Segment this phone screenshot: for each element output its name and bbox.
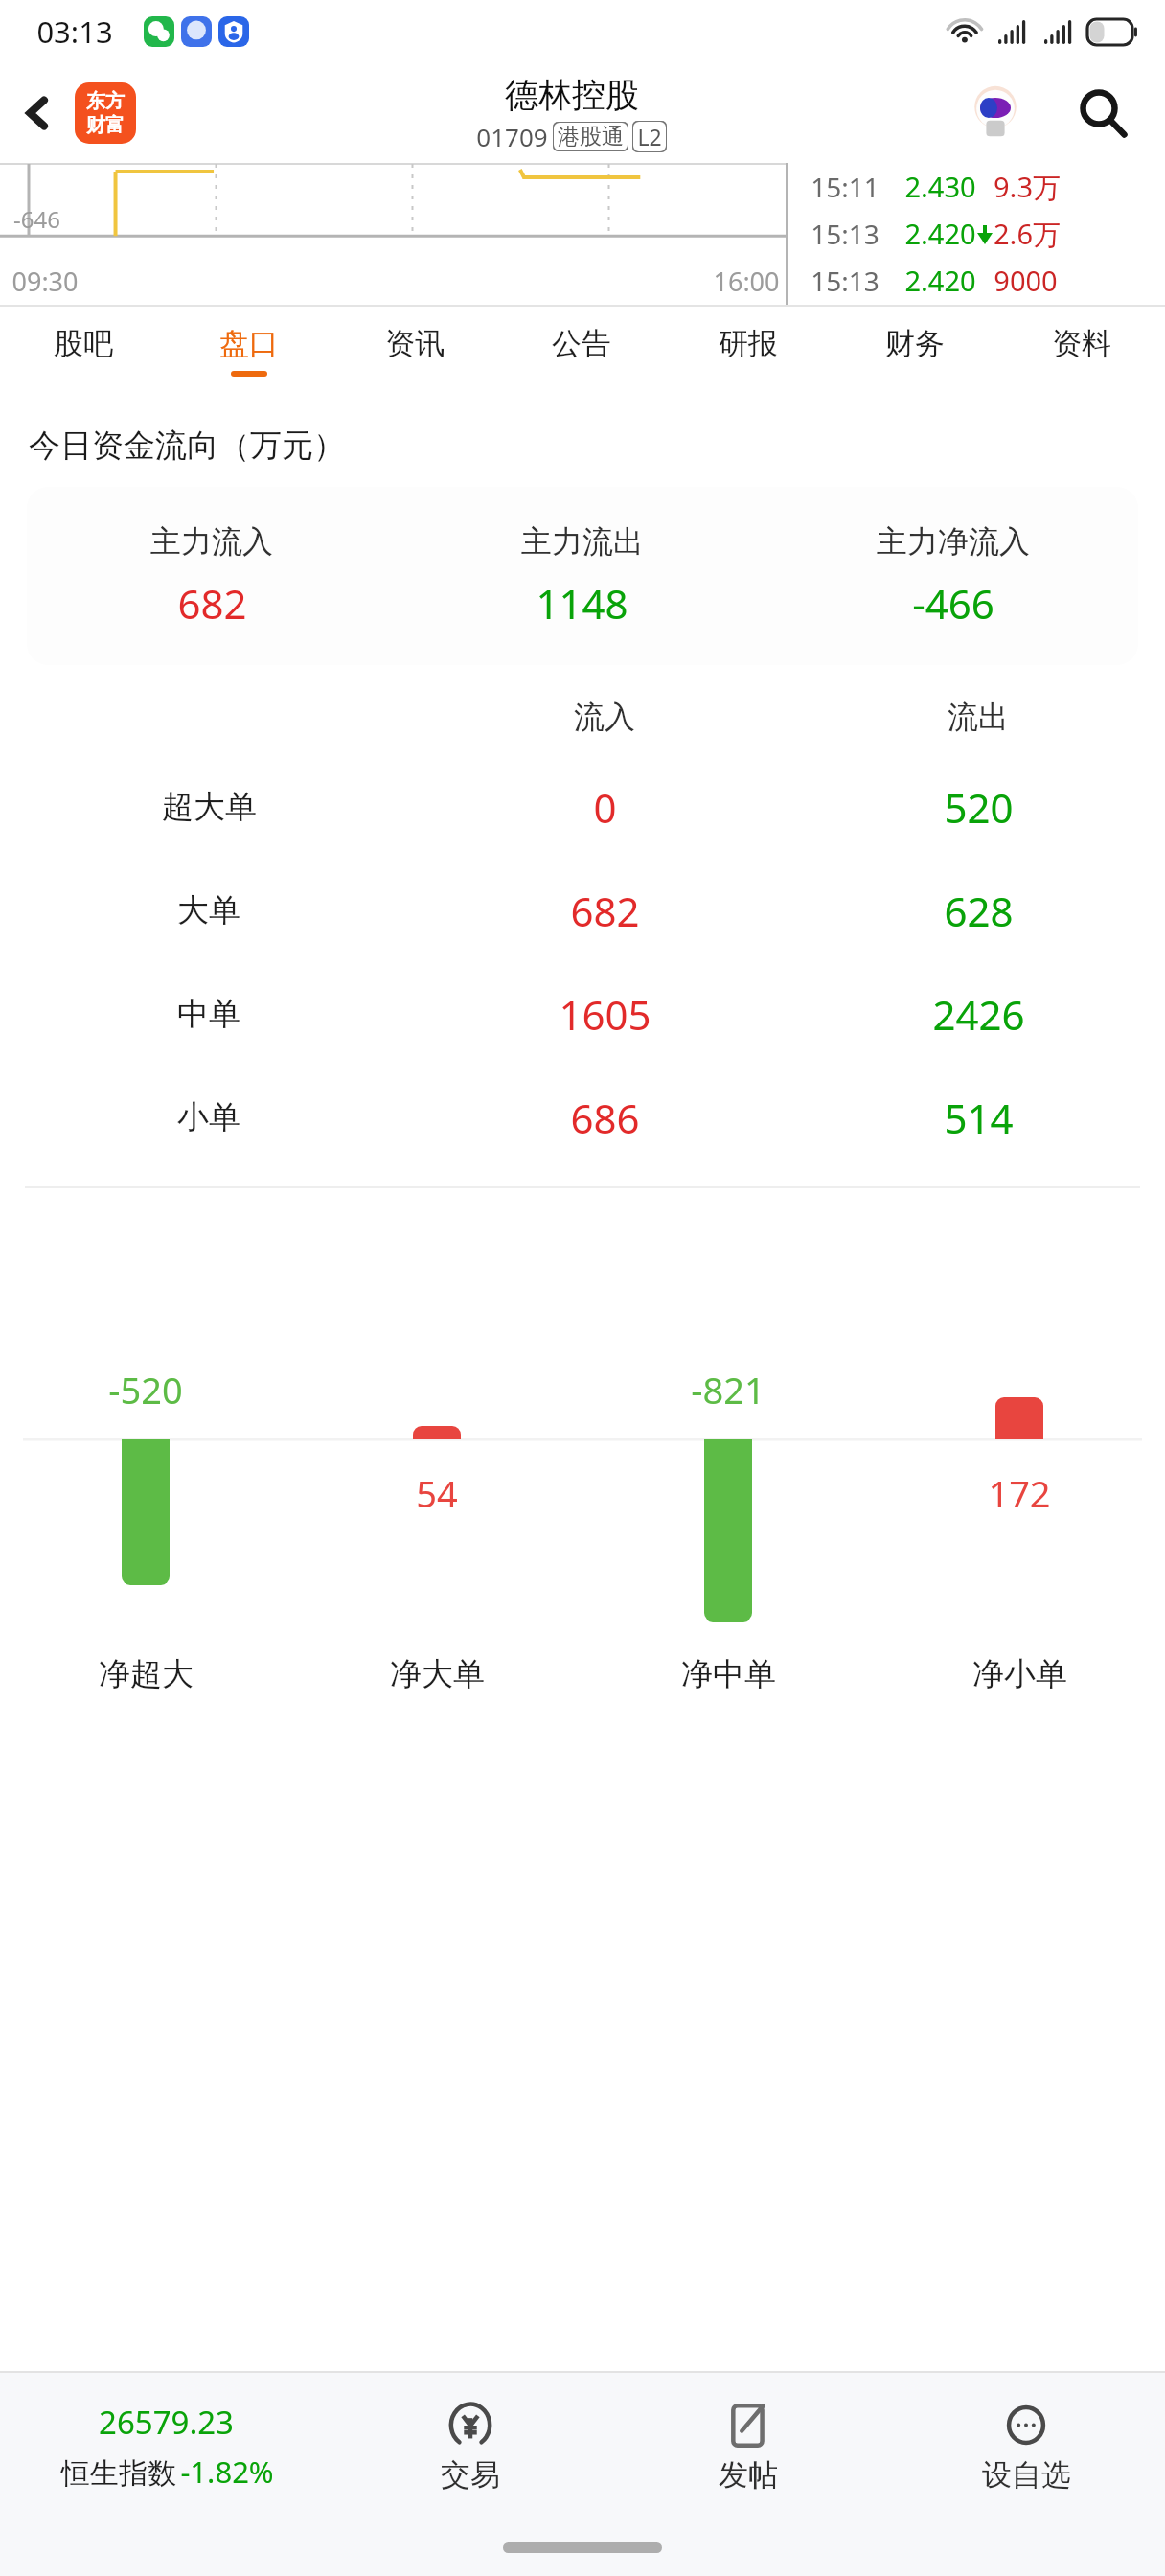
staticText: 设自选: [982, 2456, 1071, 2494]
staticText: 514: [944, 1091, 1014, 1145]
button[interactable]: 盘口: [166, 305, 331, 397]
staticText: 恒生指数: [57, 2452, 180, 2492]
button[interactable]: 资讯: [331, 305, 498, 397]
staticText: 德林控股: [505, 74, 639, 116]
button[interactable]: 研报: [665, 305, 832, 397]
button[interactable]: 主力流入: [27, 487, 1138, 665]
staticText: 682: [177, 576, 247, 631]
staticText: 0: [593, 780, 617, 835]
button[interactable]: 中单: [0, 962, 1165, 1066]
staticText: 520: [944, 780, 1014, 835]
staticText: 东方: [86, 89, 125, 113]
staticText: 中单: [177, 994, 240, 1034]
staticText: 1148: [536, 576, 628, 631]
staticText: 超大单: [162, 787, 257, 827]
staticText: 172: [988, 1468, 1051, 1518]
staticText: 净小单: [972, 1654, 1067, 1694]
staticText: 小单: [177, 1097, 240, 1138]
staticText: 流出: [948, 698, 1009, 736]
staticText: 公告: [552, 325, 611, 362]
staticText: 15:11: [811, 169, 879, 205]
staticText: 9000: [994, 262, 1058, 299]
staticText: 流入: [574, 698, 635, 736]
staticText: 15:13: [811, 263, 879, 299]
staticText: 研报: [719, 325, 778, 362]
staticText: 主力净流入: [877, 522, 1030, 561]
staticText: 01709: [476, 120, 548, 153]
staticText: 54: [416, 1468, 458, 1518]
staticText: 26579.23: [99, 2401, 234, 2444]
staticText: 资料: [1052, 325, 1111, 362]
staticText: 686: [570, 1091, 640, 1145]
button[interactable]: 东方财富: [75, 82, 136, 144]
staticText: 03:13: [36, 11, 113, 52]
staticText: 交易: [441, 2456, 500, 2494]
button[interactable]: Back: [6, 81, 69, 145]
staticText: 2.420: [904, 215, 976, 252]
staticText: -821: [691, 1365, 765, 1414]
staticText: 财富: [86, 113, 125, 137]
staticText: -646: [13, 203, 60, 235]
staticText: 2426: [932, 987, 1025, 1042]
button[interactable]: 资料: [998, 305, 1165, 397]
staticText: 9.3万: [994, 168, 1061, 206]
staticText: -1.82%: [180, 2451, 274, 2492]
button[interactable]: 交易: [331, 2373, 609, 2518]
staticText: 净超大: [99, 1654, 194, 1694]
staticText: -466: [912, 576, 994, 631]
staticText: 16:00: [713, 264, 780, 299]
staticText: 15:13: [811, 216, 879, 252]
staticText: 主力流入: [150, 522, 273, 561]
button[interactable]: 股吧: [0, 305, 166, 397]
staticText: -520: [108, 1365, 183, 1414]
button[interactable]: 26579.23: [0, 2401, 331, 2492]
staticText: 今日资金流向（万元）: [29, 425, 345, 466]
staticText: 发帖: [719, 2456, 778, 2494]
button[interactable]: 小单: [0, 1066, 1165, 1169]
staticText: L2: [637, 122, 662, 151]
staticText: 财务: [885, 325, 945, 362]
button[interactable]: 超大单: [0, 755, 1165, 859]
staticText: 净大单: [390, 1654, 485, 1694]
button[interactable]: Assistant: [962, 80, 1029, 147]
button[interactable]: 财务: [832, 305, 998, 397]
button[interactable]: 公告: [498, 305, 665, 397]
staticText: 资讯: [385, 325, 445, 362]
staticText: 盘口: [219, 325, 279, 362]
staticText: 1605: [559, 987, 651, 1042]
staticText: 2.430: [904, 168, 976, 205]
staticText: 682: [570, 884, 640, 938]
button[interactable]: 大单: [0, 859, 1165, 962]
staticText: 港股通: [558, 123, 624, 150]
staticText: 股吧: [54, 325, 113, 362]
button[interactable]: Search: [1065, 76, 1140, 150]
staticText: 628: [944, 884, 1014, 938]
staticText: 2.6万: [994, 215, 1061, 253]
staticText: 主力流出: [521, 522, 644, 561]
staticText: 大单: [177, 890, 240, 931]
staticText: 2.420: [904, 262, 976, 299]
button[interactable]: 设自选: [887, 2373, 1165, 2518]
button[interactable]: 发帖: [609, 2373, 887, 2518]
staticText: 净中单: [681, 1654, 776, 1694]
staticText: 09:30: [11, 264, 79, 299]
